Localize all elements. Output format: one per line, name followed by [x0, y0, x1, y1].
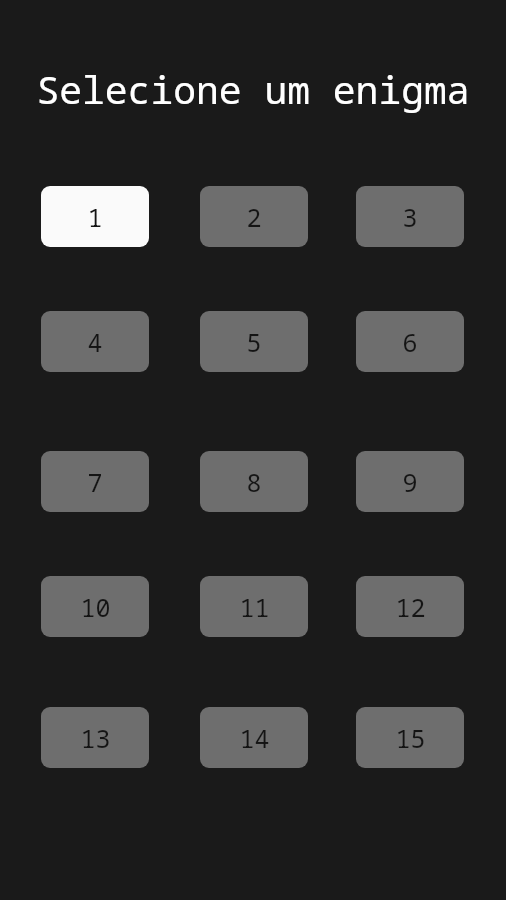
staticText: 6: [402, 325, 418, 359]
button[interactable]: 8: [200, 451, 308, 512]
button[interactable]: 14: [200, 707, 308, 768]
staticText: 8: [246, 465, 262, 499]
staticText: 4: [87, 325, 103, 359]
staticText: 12: [395, 590, 426, 624]
staticText: 11: [239, 590, 270, 624]
staticText: 15: [395, 721, 426, 755]
button[interactable]: 11: [200, 576, 308, 637]
staticText: 14: [239, 721, 270, 755]
button[interactable]: 2: [200, 186, 308, 247]
staticText: 2: [246, 200, 262, 234]
button[interactable]: 15: [356, 707, 464, 768]
button[interactable]: 13: [41, 707, 149, 768]
staticText: 3: [402, 200, 418, 234]
button[interactable]: 10: [41, 576, 149, 637]
staticText: 7: [87, 465, 103, 499]
button[interactable]: 9: [356, 451, 464, 512]
button[interactable]: 12: [356, 576, 464, 637]
staticText: 5: [246, 325, 262, 359]
button[interactable]: 5: [200, 311, 308, 372]
staticText: Selecione um enigma: [0, 63, 506, 115]
button[interactable]: 6: [356, 311, 464, 372]
staticText: 1: [87, 200, 103, 234]
button[interactable]: 7: [41, 451, 149, 512]
staticText: 10: [80, 590, 111, 624]
button[interactable]: 3: [356, 186, 464, 247]
staticText: 9: [402, 465, 418, 499]
button[interactable]: 4: [41, 311, 149, 372]
staticText: 13: [80, 721, 111, 755]
button[interactable]: 1: [41, 186, 149, 247]
